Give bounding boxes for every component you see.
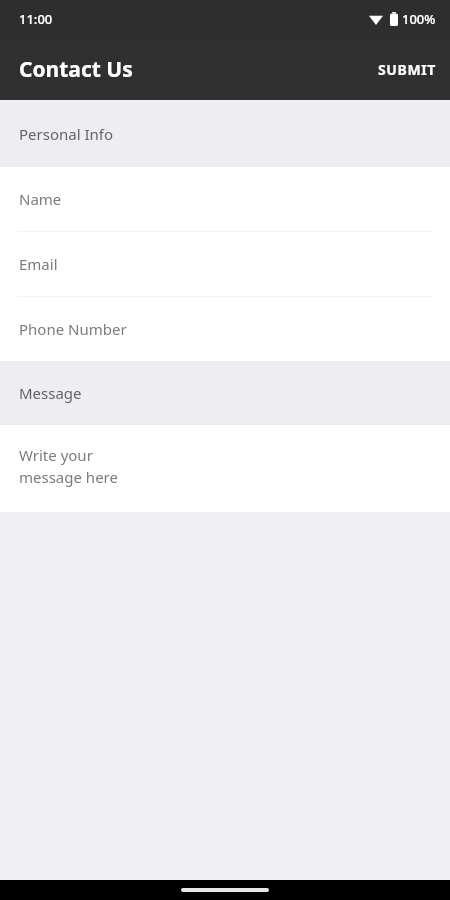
staticText: Email <box>19 254 58 274</box>
button[interactable]: SUBMIT <box>364 48 450 91</box>
staticText: Message <box>19 383 82 403</box>
other: Home gesture handle <box>181 888 269 892</box>
staticText: Phone Number <box>19 319 127 339</box>
button[interactable]: Phone Number <box>0 297 450 361</box>
staticText: Write your message here <box>19 445 118 488</box>
button[interactable]: Email <box>0 232 450 296</box>
staticText: Name <box>19 189 62 209</box>
button[interactable]: Name <box>0 167 450 231</box>
staticText: 11:00 <box>19 10 53 28</box>
staticText: Personal Info <box>19 124 114 144</box>
staticText: 100% <box>402 10 436 28</box>
staticText: Contact Us <box>19 55 133 84</box>
button[interactable]: Write your message here <box>0 425 450 512</box>
staticText: SUBMIT <box>378 60 436 79</box>
